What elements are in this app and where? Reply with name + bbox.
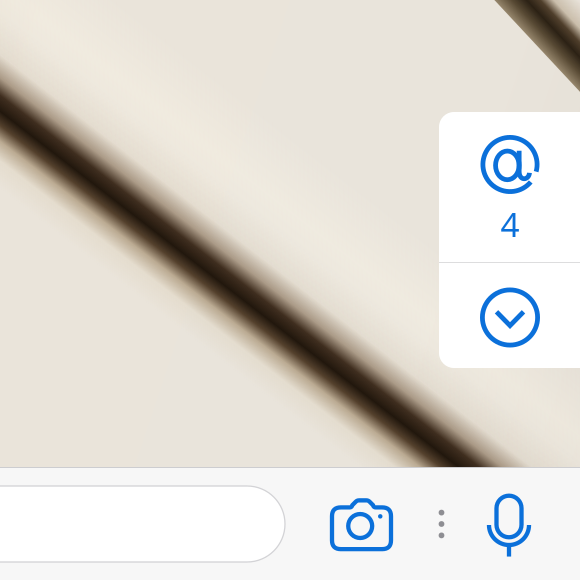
button[interactable]: Type a message — [0, 486, 285, 562]
button[interactable]: Scroll to bottom — [439, 263, 580, 368]
button[interactable]: Camera — [320, 483, 402, 565]
button[interactable]: More options — [417, 483, 465, 565]
button[interactable]: Mentions, 4 unread — [439, 112, 580, 262]
button[interactable]: Voice message — [471, 483, 547, 565]
staticText: 4 — [500, 202, 519, 246]
